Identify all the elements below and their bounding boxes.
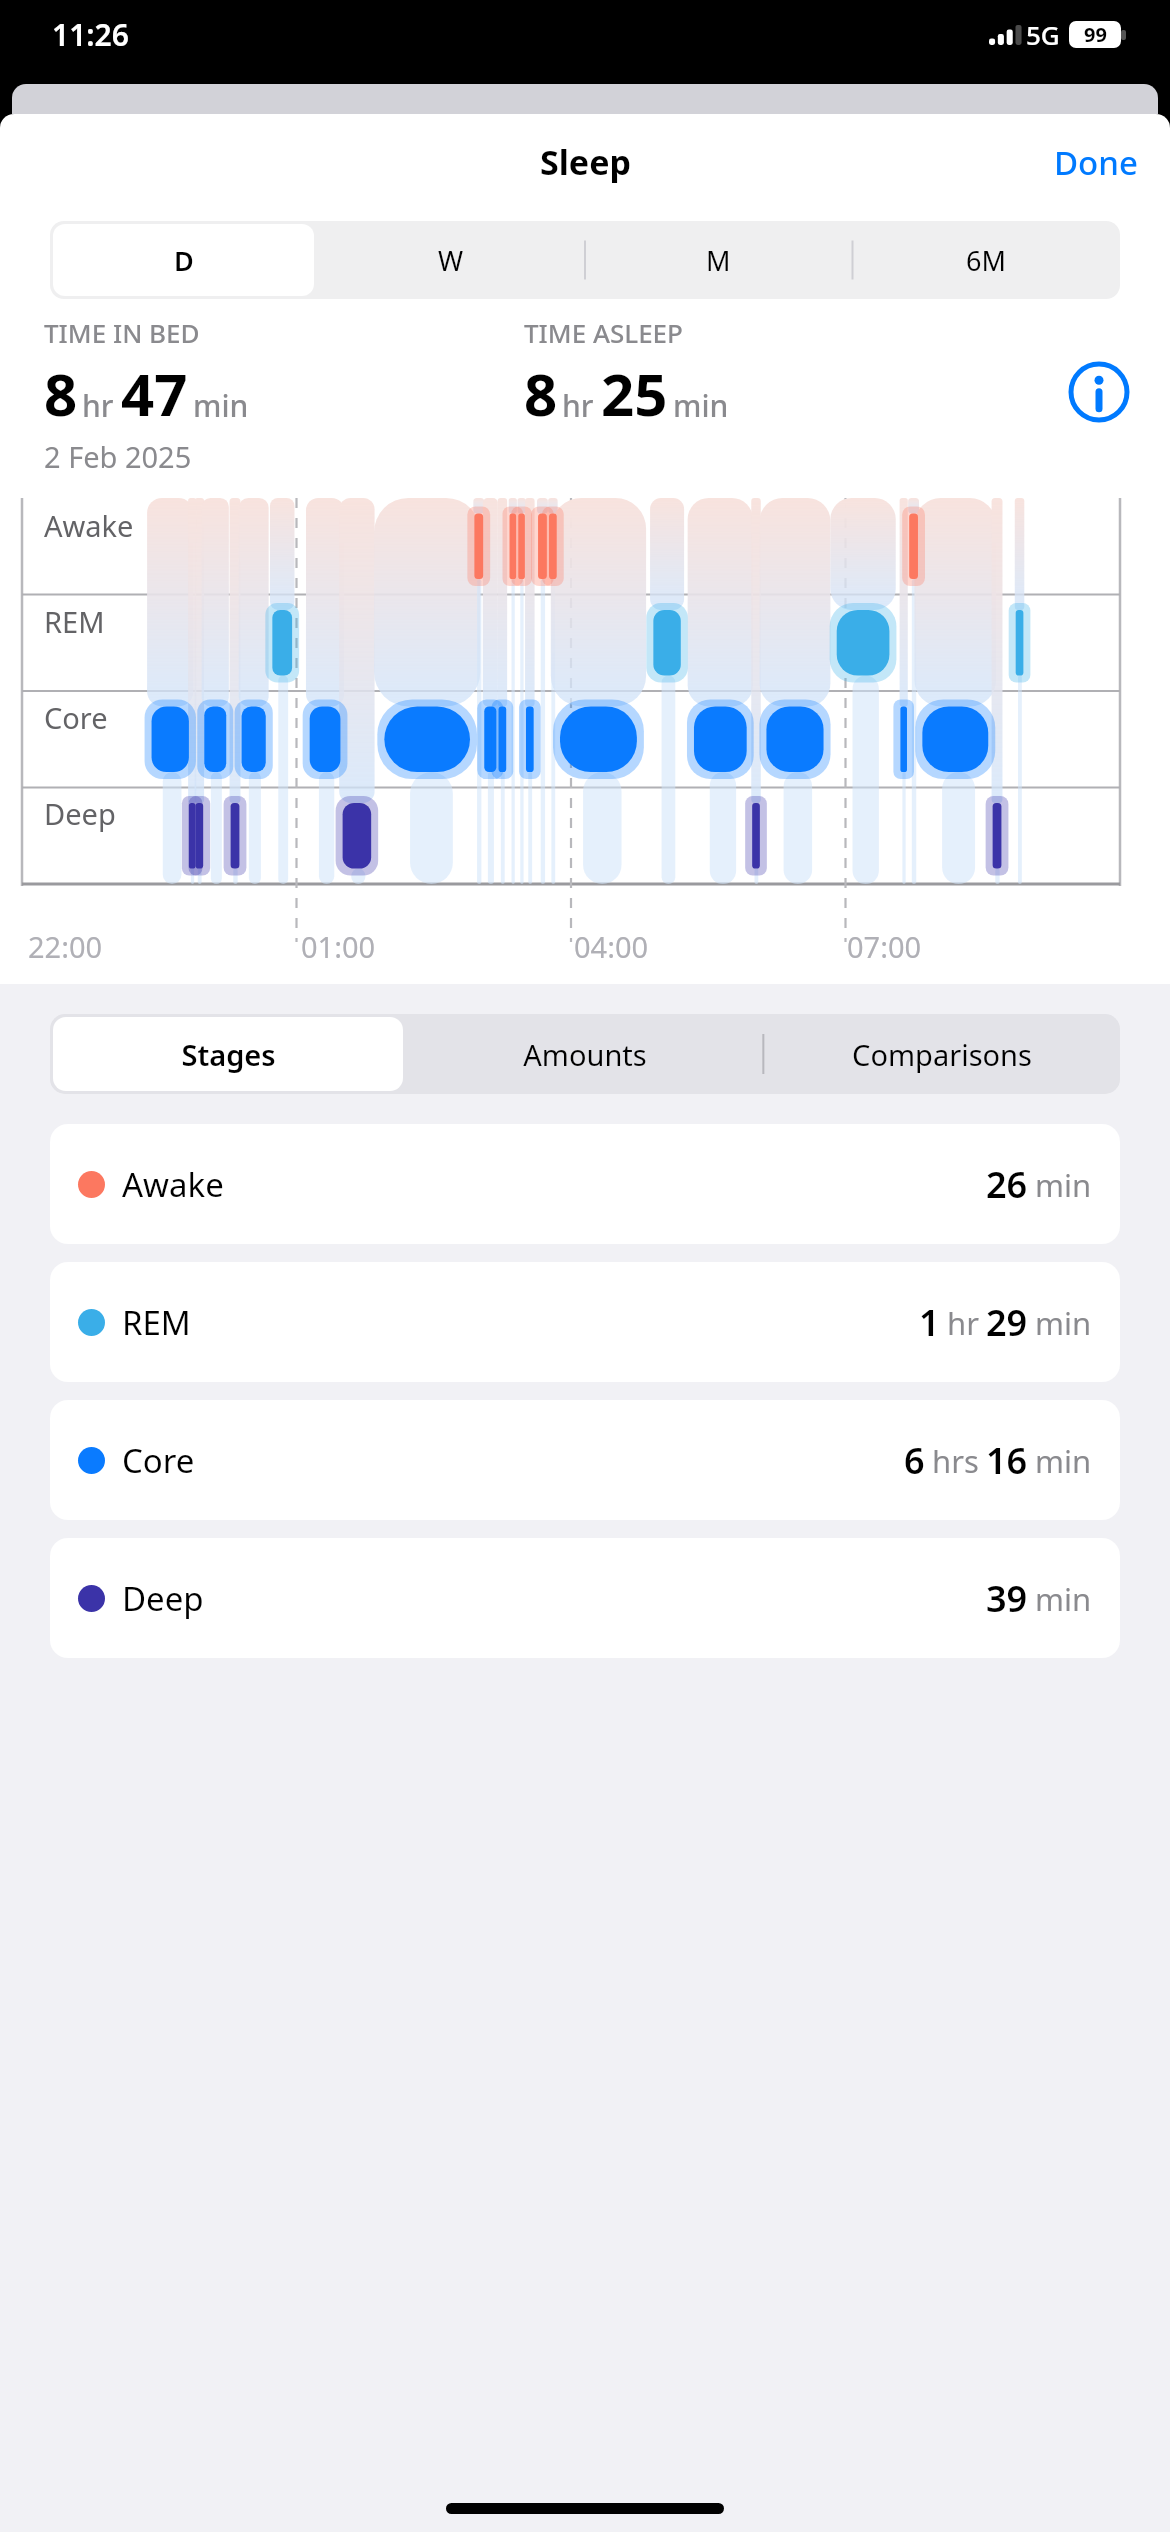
button[interactable]: M: [587, 224, 849, 296]
staticText: 25: [601, 354, 668, 433]
button[interactable]: Comparisons: [766, 1017, 1117, 1091]
staticText: 07:00: [847, 927, 922, 966]
staticText: min: [673, 385, 729, 426]
staticText: REM: [122, 1300, 191, 1345]
staticText: hr: [562, 385, 594, 426]
staticText: Core: [122, 1438, 195, 1483]
staticText: hr: [82, 385, 114, 426]
staticText: D: [174, 242, 194, 279]
staticText: 04:00: [574, 927, 649, 966]
staticText: M: [706, 242, 731, 279]
staticText: 47: [121, 354, 188, 433]
staticText: 5G: [1026, 17, 1060, 52]
button[interactable]: D: [53, 224, 314, 296]
staticText: min: [1035, 1578, 1092, 1620]
button[interactable]: Awake: [50, 1124, 1120, 1244]
button[interactable]: Done: [1022, 128, 1170, 197]
button[interactable]: Information: [1068, 361, 1130, 423]
staticText: 8: [44, 354, 78, 433]
staticText: REM: [44, 602, 105, 641]
staticText: 22:00: [28, 927, 103, 966]
staticText: Amounts: [523, 1035, 647, 1074]
staticText: 6: [904, 1436, 925, 1485]
staticText: hrs: [932, 1440, 979, 1482]
button[interactable]: Stages: [53, 1017, 403, 1091]
staticText: min: [1035, 1164, 1092, 1206]
staticText: 1: [919, 1298, 940, 1347]
staticText: 39: [986, 1574, 1028, 1623]
staticText: Done: [1054, 140, 1138, 185]
staticText: min: [1035, 1440, 1092, 1482]
button[interactable]: Amounts: [409, 1017, 760, 1091]
staticText: Awake: [122, 1162, 224, 1207]
staticText: 11:26: [52, 14, 129, 55]
staticText: Deep: [122, 1576, 204, 1621]
staticText: 2 Feb 2025: [44, 437, 192, 476]
button[interactable]: Core: [50, 1400, 1120, 1520]
staticText: TIME ASLEEP: [524, 315, 683, 350]
staticText: Core: [44, 698, 108, 737]
staticText: min: [193, 385, 249, 426]
staticText: TIME IN BED: [44, 315, 200, 350]
button[interactable]: W: [320, 224, 581, 296]
staticText: Deep: [44, 794, 116, 833]
staticText: W: [438, 242, 464, 279]
staticText: min: [1035, 1302, 1092, 1344]
staticText: Comparisons: [852, 1035, 1032, 1074]
staticText: 01:00: [301, 927, 376, 966]
staticText: 8: [524, 354, 558, 433]
staticText: 6M: [966, 242, 1006, 279]
button[interactable]: Deep: [50, 1538, 1120, 1658]
staticText: Awake: [44, 506, 134, 545]
staticText: 29: [986, 1298, 1028, 1347]
staticText: Stages: [181, 1035, 276, 1074]
staticText: 99: [1084, 21, 1107, 48]
staticText: hr: [947, 1302, 979, 1344]
staticText: 26: [986, 1160, 1028, 1209]
staticText: Sleep: [540, 139, 631, 185]
button[interactable]: REM: [50, 1262, 1120, 1382]
staticText: 16: [986, 1436, 1028, 1485]
button[interactable]: 6M: [855, 224, 1117, 296]
